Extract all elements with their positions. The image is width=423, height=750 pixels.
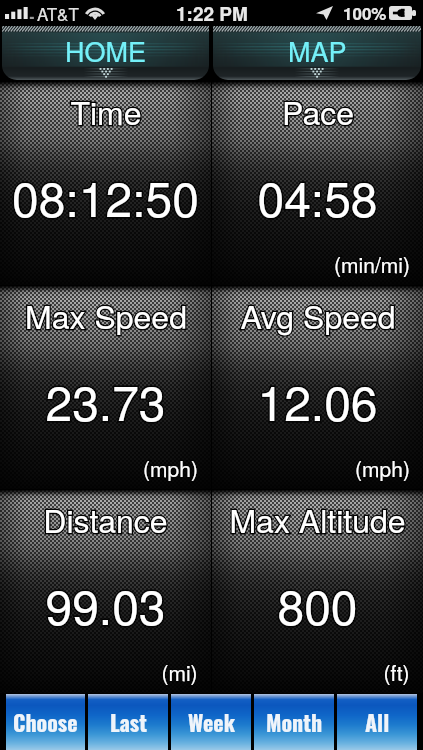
staticText: Max Altitude	[229, 496, 406, 542]
staticText: 12.06	[257, 366, 378, 435]
staticText: (ft)	[383, 657, 410, 687]
button[interactable]: Distance	[0, 490, 211, 693]
button[interactable]: Max Altitude	[212, 490, 423, 693]
other: Wi-Fi	[85, 6, 105, 20]
staticText: 12.06	[257, 366, 378, 435]
button[interactable]: Max Speed	[0, 286, 211, 489]
staticText: (min/mi)	[334, 249, 410, 279]
staticText: Time	[70, 88, 142, 134]
other: Location	[316, 6, 333, 20]
staticText: 04:58	[257, 162, 378, 231]
staticText: Month	[266, 706, 323, 739]
staticText: Week	[188, 706, 235, 739]
staticText: 800	[277, 570, 358, 639]
other: Battery	[389, 6, 416, 20]
staticText: Pace	[282, 88, 354, 134]
staticText: (mph)	[355, 453, 410, 483]
button[interactable]: Month	[254, 694, 334, 750]
button[interactable]: Last	[88, 694, 168, 750]
button[interactable]: Choose	[6, 694, 85, 750]
staticText: Time	[70, 88, 142, 134]
staticText: Max Speed	[25, 292, 187, 338]
staticText: AT&T	[37, 1, 79, 25]
button[interactable]: Week	[171, 694, 251, 750]
staticText: Pace	[282, 88, 354, 134]
staticText: All	[365, 706, 390, 739]
staticText: Distance	[43, 496, 168, 542]
staticText: (min/mi)	[334, 249, 410, 279]
staticText: (mi)	[161, 657, 198, 687]
staticText: Avg Speed	[240, 292, 396, 338]
staticText: (mph)	[143, 453, 198, 483]
staticText: 99.03	[45, 570, 166, 639]
staticText: (mph)	[143, 453, 198, 483]
staticText: Distance	[43, 496, 168, 542]
button[interactable]: Pace	[212, 82, 423, 285]
staticText: HOME	[65, 31, 146, 70]
button[interactable]: All	[337, 694, 417, 750]
staticText: MAP	[288, 31, 347, 70]
staticText: 08:12:50	[12, 162, 199, 231]
staticText: 100%	[343, 1, 387, 25]
staticText: (mph)	[355, 453, 410, 483]
staticText: Avg Speed	[240, 292, 396, 338]
button[interactable]: Time	[0, 82, 211, 285]
staticText: Choose	[13, 706, 78, 739]
staticText: Last	[110, 706, 147, 739]
other: Signal strength	[5, 7, 36, 19]
staticText: 23.73	[45, 366, 166, 435]
staticText: 99.03	[45, 570, 166, 639]
staticText: 23.73	[45, 366, 166, 435]
staticText: (ft)	[383, 657, 410, 687]
button[interactable]: Avg Speed	[212, 286, 423, 489]
button[interactable]: MAP	[213, 26, 421, 80]
button[interactable]: HOME	[2, 26, 209, 80]
staticText: 1:22 PM	[176, 0, 248, 26]
staticText: 800	[277, 570, 358, 639]
staticText: (mi)	[161, 657, 198, 687]
staticText: 08:12:50	[12, 162, 199, 231]
staticText: Max Altitude	[229, 496, 406, 542]
staticText: Max Speed	[25, 292, 187, 338]
staticText: 04:58	[257, 162, 378, 231]
